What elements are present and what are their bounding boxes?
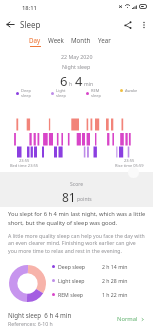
staticText: Night sleep 6 h 4 min [8, 311, 72, 319]
button[interactable]: Share [119, 16, 136, 33]
button[interactable]: Day [29, 36, 41, 47]
staticText: 22 May 2020 [61, 53, 93, 60]
staticText: min [84, 81, 94, 88]
staticText: Week [48, 36, 64, 44]
button[interactable]: More options [136, 17, 151, 32]
button[interactable]: Back [0, 14, 20, 34]
staticText: sleep [91, 93, 101, 98]
staticText: Score [70, 181, 83, 188]
staticText: sleep [56, 93, 66, 98]
staticText: 2 h 28 min [102, 277, 128, 284]
staticText: 23:55 [19, 158, 30, 163]
staticText: Deep sleep [58, 263, 102, 270]
staticText: Month [71, 36, 91, 44]
staticText: 6 [60, 72, 68, 90]
button[interactable]: Night sleep 6 h 4 min [8, 311, 145, 327]
staticText: 4 [75, 72, 83, 90]
staticText: h [69, 81, 73, 88]
staticText: Night sleep [62, 63, 91, 70]
staticText: REM sleep [58, 291, 102, 298]
staticText: 1 h 22 min [102, 291, 128, 298]
staticText: Bed time 23:55 [10, 163, 39, 168]
staticText: 81 [62, 189, 76, 205]
staticText: Rise time 05:59 [115, 163, 144, 168]
staticText: Light [56, 88, 66, 93]
staticText: Awake [125, 88, 138, 93]
staticText: REM [91, 88, 100, 93]
staticText: Deep [21, 88, 31, 93]
staticText: Day [29, 36, 41, 44]
staticText: 2 h 14 min [102, 263, 128, 270]
staticText: You slept for 6 h 4 min last night, whic… [8, 210, 146, 227]
staticText: Year [98, 36, 111, 44]
staticText: points [77, 196, 92, 203]
staticText: A little more quality sleep can help you… [8, 232, 146, 255]
staticText: 18:11 [22, 4, 37, 12]
button[interactable]: Month [71, 36, 91, 47]
button[interactable]: Year [98, 36, 111, 47]
staticText: Light sleep [58, 277, 102, 284]
button[interactable]: Week [48, 36, 64, 47]
staticText: sleep [21, 93, 31, 98]
staticText: Sleep [20, 19, 41, 30]
staticText: References: 6-10 h [8, 320, 53, 327]
staticText: Normal [117, 315, 138, 323]
staticText: 23:55 [124, 158, 135, 163]
